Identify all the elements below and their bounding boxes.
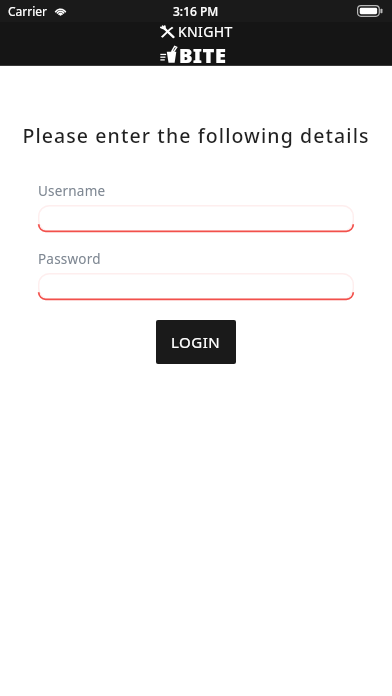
staticText: KNIGHT: [178, 22, 233, 41]
staticText: BITE: [179, 42, 227, 66]
button[interactable]: Password: [38, 250, 354, 300]
staticText: Username: [38, 182, 106, 200]
staticText: Carrier: [8, 3, 48, 19]
staticText: LOGIN: [171, 332, 221, 352]
staticText: Password: [38, 250, 101, 268]
button[interactable]: Username: [38, 182, 354, 232]
staticText: Please enter the following details: [0, 122, 392, 149]
staticText: 3:16 PM: [173, 3, 219, 19]
button[interactable]: LOGIN: [156, 320, 236, 364]
